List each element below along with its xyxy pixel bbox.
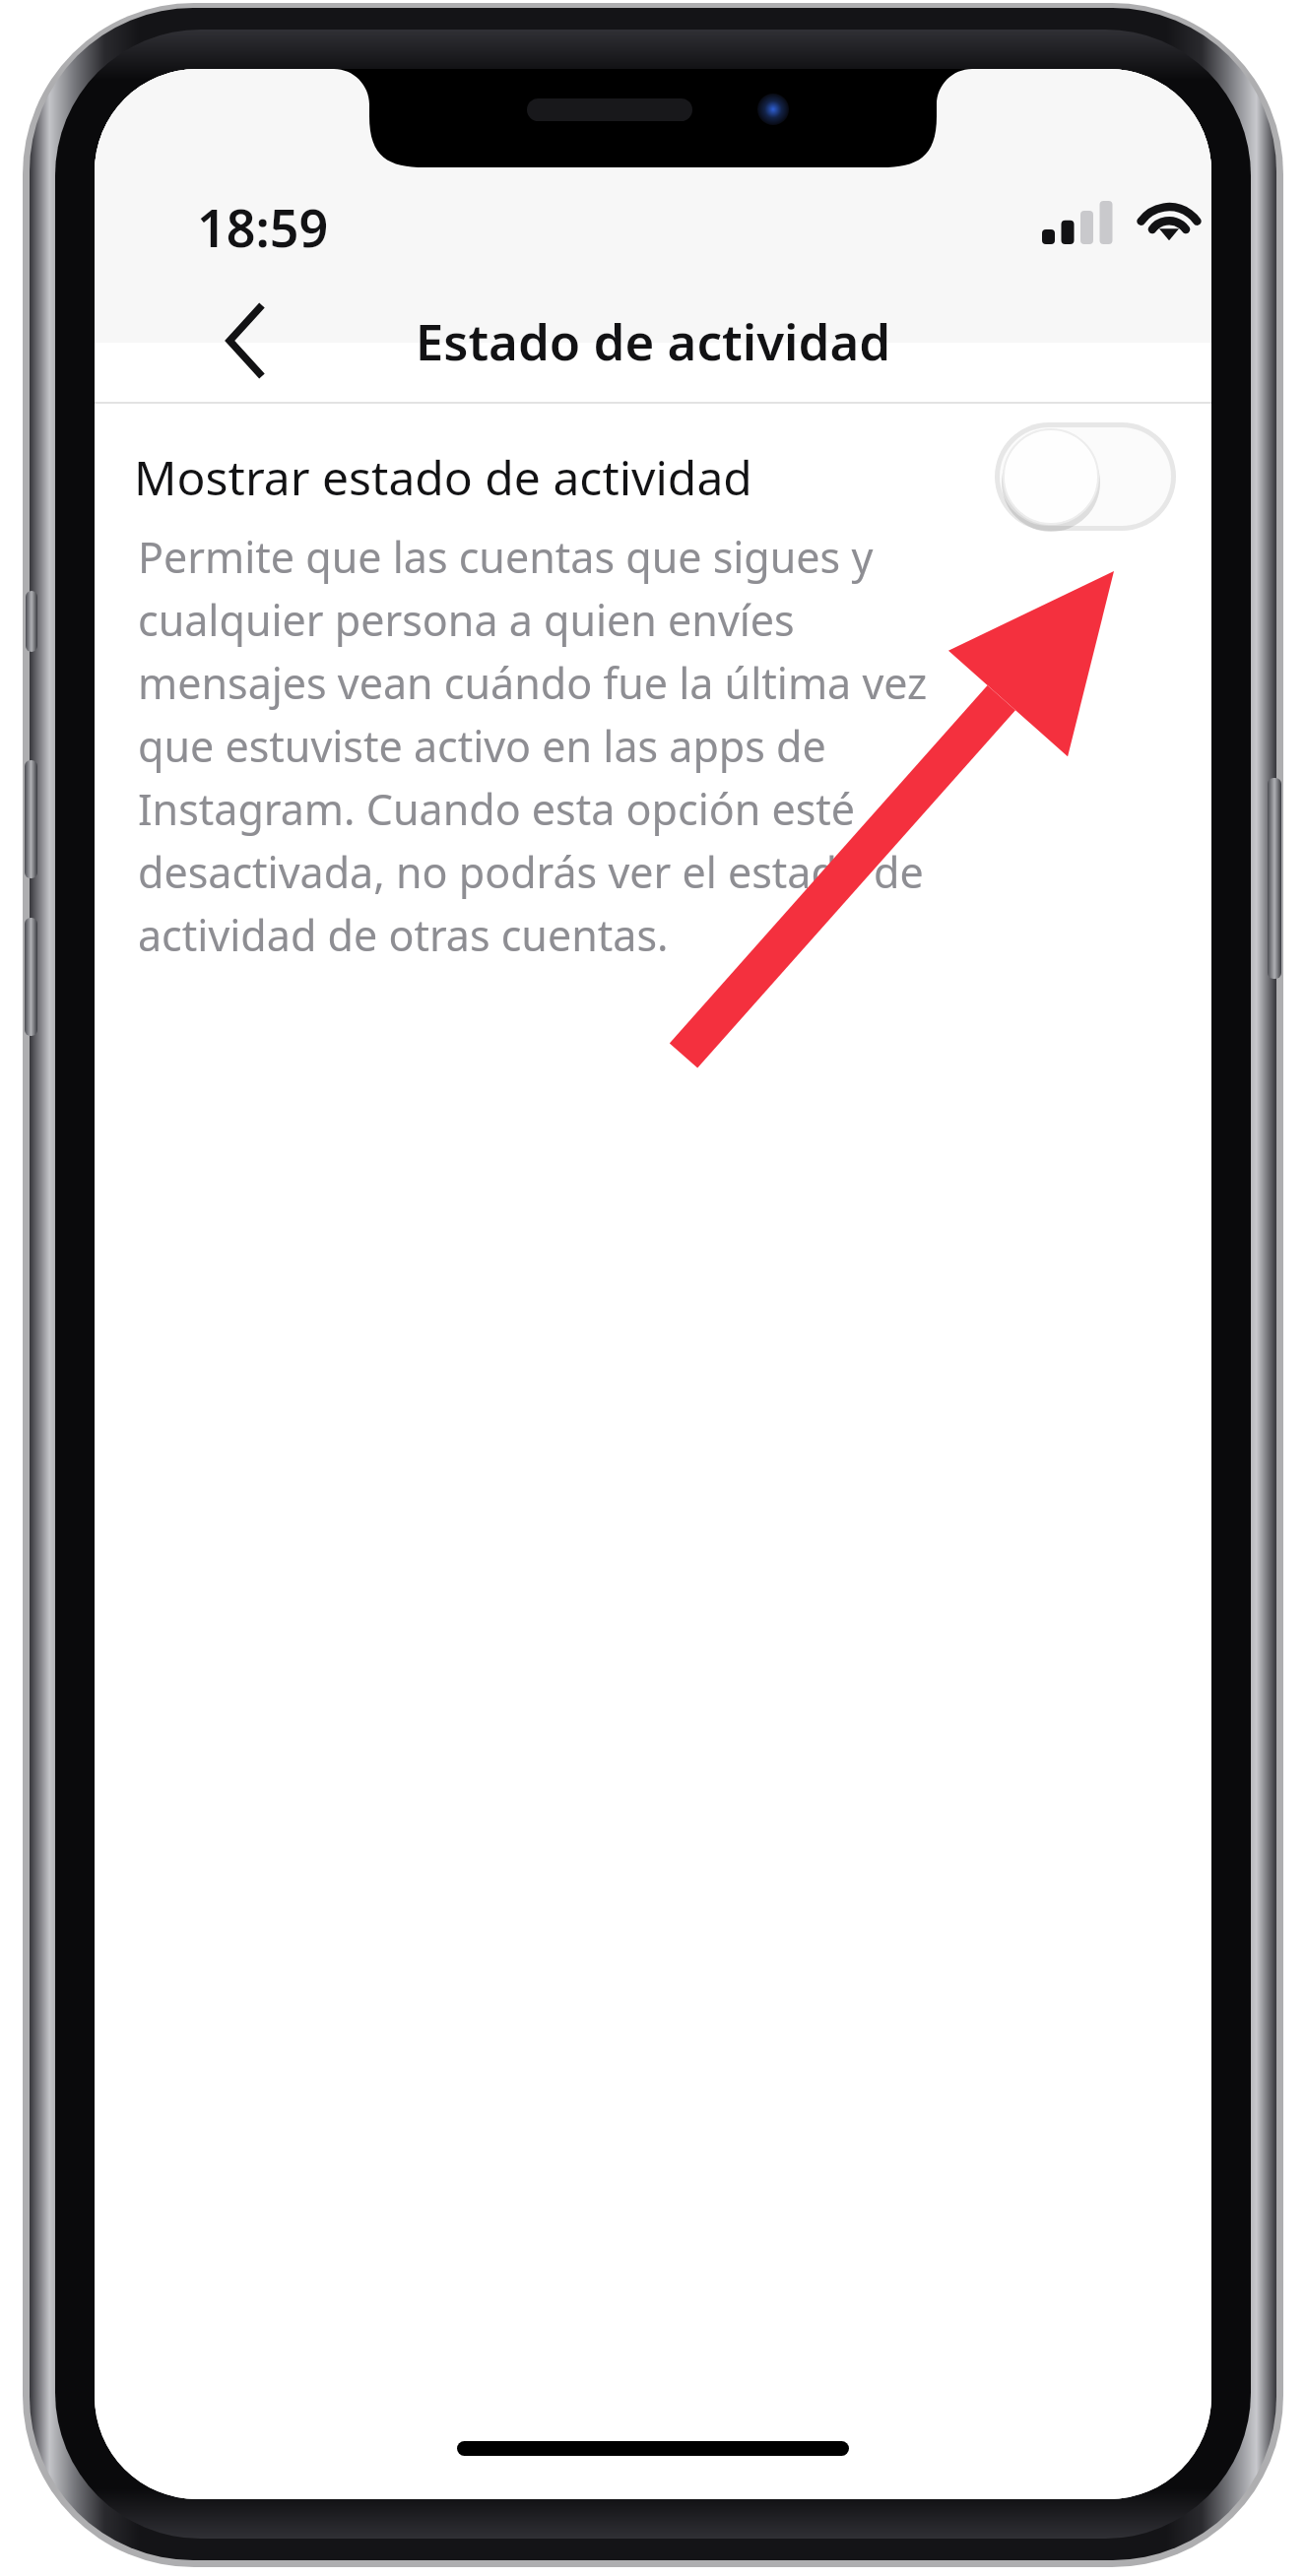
button[interactable]: Mostrar estado de actividad [995, 422, 1176, 531]
button[interactable]: Atrás [191, 290, 301, 392]
staticText: Permite que las cuentas que sigues y cua… [138, 528, 965, 964]
button[interactable]: Mostrar estado de actividad [95, 412, 1211, 542]
staticText: Estado de actividad [95, 306, 1211, 374]
staticText: Mostrar estado de actividad [134, 445, 752, 509]
staticText: 18:59 [197, 192, 329, 262]
